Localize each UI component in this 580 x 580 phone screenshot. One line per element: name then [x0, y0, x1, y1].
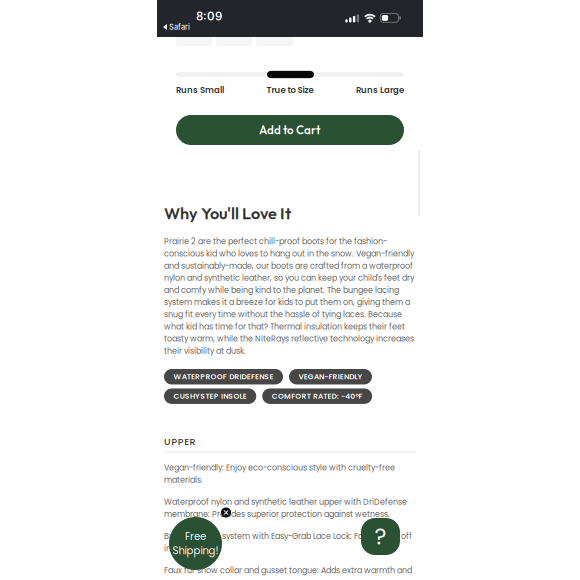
staticText: Waterproof nylon and synthetic leather u… [164, 496, 407, 520]
staticText: True to Size [266, 84, 313, 96]
staticText: Bungee lacing system with Easy-Grab Lace… [164, 531, 412, 554]
button[interactable]: Safari [163, 22, 190, 31]
staticText: Prairie 2 are the perfect chill-proof bo… [164, 236, 414, 356]
staticText: Faux fur snow collar and gusset tongue: … [164, 565, 412, 576]
staticText: Vegan-friendly: Enjoy eco-conscious styl… [164, 462, 395, 486]
button[interactable]: Add to Cart [176, 115, 404, 145]
staticText: VEGAN-FRIENDLY [298, 371, 362, 382]
staticText: Safari [169, 22, 190, 31]
staticText: Runs Large [356, 84, 404, 96]
button[interactable]: Free [169, 517, 222, 570]
button[interactable]: VEGAN-FRIENDLY [289, 369, 372, 384]
staticText: Shipping! [172, 543, 218, 558]
staticText: WATERPROOF DRIDEFENSE [173, 371, 273, 382]
staticText: Add to Cart [259, 123, 321, 137]
staticText: UPPER [164, 435, 196, 448]
staticText: Why You'll Love It [164, 203, 291, 223]
staticText: ? [374, 521, 386, 552]
button[interactable]: WATERPROOF DRIDEFENSE [164, 369, 283, 384]
button[interactable]: CUSHYSTEP INSOLE [164, 388, 256, 404]
button[interactable]: Help [361, 518, 400, 555]
staticText: Runs Small [176, 84, 224, 96]
staticText: 8:09 [196, 9, 222, 23]
staticText: CUSHYSTEP INSOLE [173, 391, 247, 401]
staticText: Free [185, 529, 206, 543]
button[interactable]: Close [221, 507, 231, 517]
staticText: COMFORT RATED: -40°F [272, 391, 363, 401]
button[interactable]: COMFORT RATED: -40°F [262, 388, 372, 404]
